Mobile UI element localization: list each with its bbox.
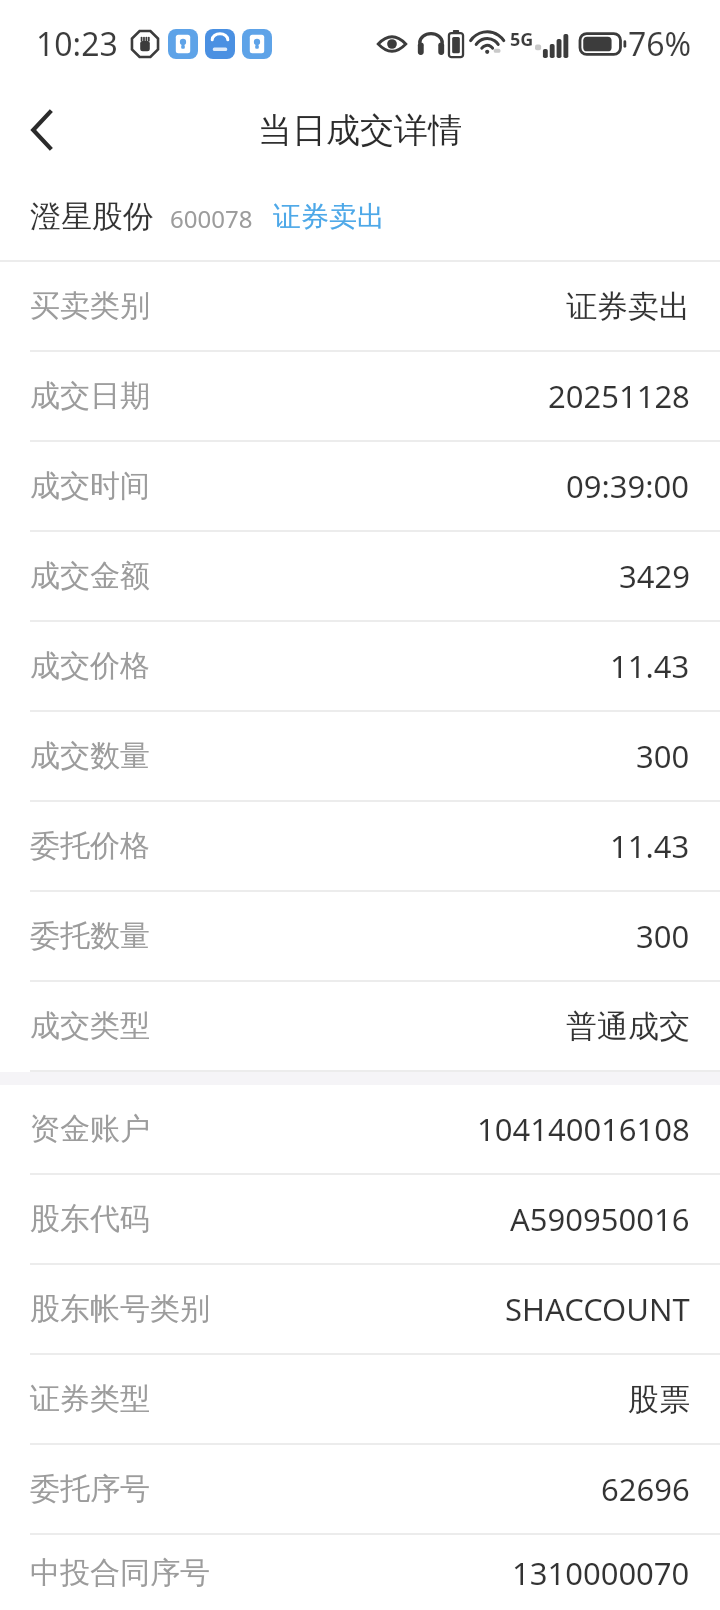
staticText: 300 — [636, 735, 690, 777]
staticText: 成交数量 — [30, 737, 150, 775]
button[interactable]: 股东代码 — [0, 1175, 720, 1263]
staticText: 委托价格 — [30, 827, 150, 865]
staticText: 澄星股份 — [30, 197, 154, 236]
button[interactable]: 成交价格 — [0, 622, 720, 710]
staticText: 成交价格 — [30, 647, 150, 685]
staticText: 中投合同序号 — [30, 1554, 210, 1592]
button[interactable]: 中投合同序号 — [0, 1535, 720, 1610]
staticText: 300 — [636, 915, 690, 957]
staticText: 委托序号 — [30, 1470, 150, 1508]
staticText: 股东帐号类别 — [30, 1290, 210, 1328]
staticText: 股东代码 — [30, 1200, 150, 1238]
button[interactable]: 委托价格 — [0, 802, 720, 890]
button[interactable]: 证券类型 — [0, 1355, 720, 1443]
button[interactable]: 成交金额 — [0, 532, 720, 620]
staticText: 1310000070 — [512, 1552, 690, 1594]
button[interactable]: 资金账户 — [0, 1085, 720, 1173]
staticText: A590950016 — [510, 1198, 690, 1240]
staticText: 股票 — [628, 1380, 690, 1419]
button[interactable]: 委托序号 — [0, 1445, 720, 1533]
staticText: 3429 — [619, 555, 690, 597]
button[interactable]: 股东帐号类别 — [0, 1265, 720, 1353]
staticText: 62696 — [601, 1468, 690, 1510]
staticText: 委托数量 — [30, 917, 150, 955]
staticText: 10:23 — [36, 22, 118, 66]
staticText: 当日成交详情 — [258, 109, 462, 152]
button[interactable]: 成交日期 — [0, 352, 720, 440]
staticText: 成交金额 — [30, 557, 150, 595]
staticText: 成交时间 — [30, 467, 150, 505]
staticText: 证券卖出 — [273, 199, 385, 234]
staticText: 600078 — [170, 202, 253, 235]
button[interactable]: 成交类型 — [0, 982, 720, 1070]
button[interactable]: 委托数量 — [0, 892, 720, 980]
staticText: 证券类型 — [30, 1380, 150, 1418]
staticText: 买卖类别 — [30, 287, 150, 325]
staticText: 成交日期 — [30, 377, 150, 415]
staticText: 5G — [510, 27, 534, 52]
staticText: 20251128 — [548, 375, 690, 417]
button[interactable]: 买卖类别 — [0, 262, 720, 350]
button[interactable]: 证券卖出 — [273, 199, 385, 234]
staticText: 76% — [628, 22, 692, 66]
staticText: SHACCOUNT — [505, 1288, 690, 1330]
staticText: 普通成交 — [566, 1007, 690, 1046]
button[interactable]: 成交时间 — [0, 442, 720, 530]
staticText: 成交类型 — [30, 1007, 150, 1045]
staticText: 11.43 — [610, 825, 690, 867]
staticText: 09:39:00 — [566, 465, 690, 507]
button[interactable]: 返回 — [0, 88, 84, 172]
staticText: 11.43 — [610, 645, 690, 687]
staticText: 证券卖出 — [566, 287, 690, 326]
button[interactable]: 成交数量 — [0, 712, 720, 800]
staticText: 资金账户 — [30, 1110, 150, 1148]
staticText: 104140016108 — [477, 1108, 690, 1150]
